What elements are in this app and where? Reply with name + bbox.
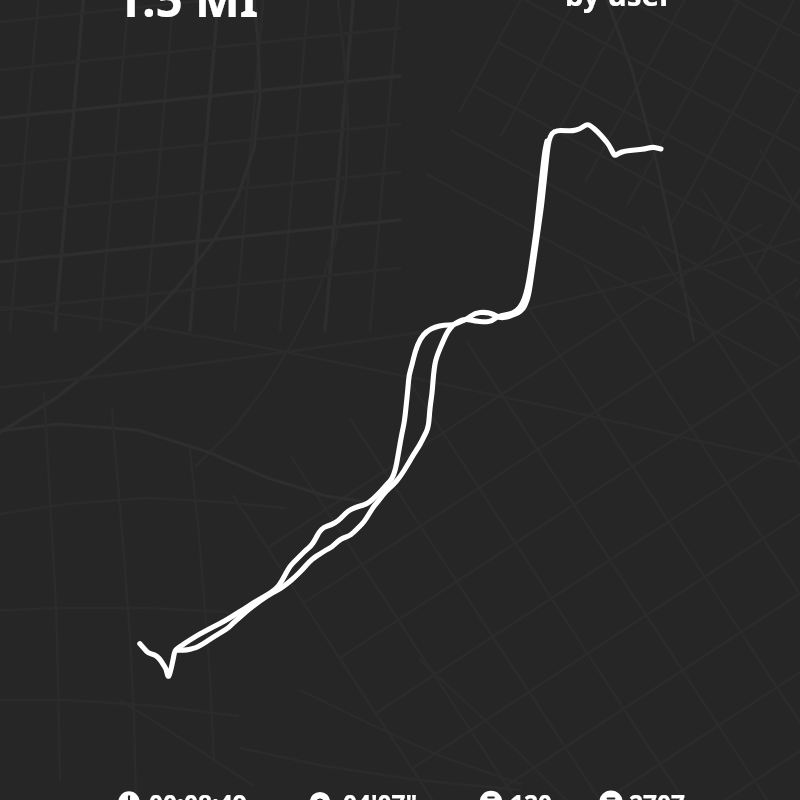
staticText: 2707 xyxy=(629,787,686,800)
staticText: 00:08:49 xyxy=(149,787,247,800)
button[interactable]: 04'07" xyxy=(309,791,331,800)
staticText: 04'07" xyxy=(343,787,418,800)
button[interactable]: 00:08:49 xyxy=(118,791,140,800)
staticText: by user xyxy=(565,0,673,14)
staticText: 120 xyxy=(510,787,553,800)
button[interactable]: 120 xyxy=(480,791,502,800)
staticText: 1.5 MI xyxy=(115,0,259,31)
button[interactable]: 2707 xyxy=(600,791,622,800)
